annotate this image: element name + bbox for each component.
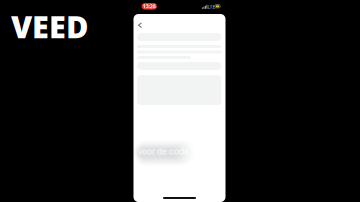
staticText: voor de code In: [138, 146, 198, 156]
button[interactable]: Back: [134, 19, 145, 31]
staticText: LTE: [207, 4, 215, 10]
staticText: VEED: [11, 6, 89, 47]
staticText: 13:26: [143, 3, 156, 10]
